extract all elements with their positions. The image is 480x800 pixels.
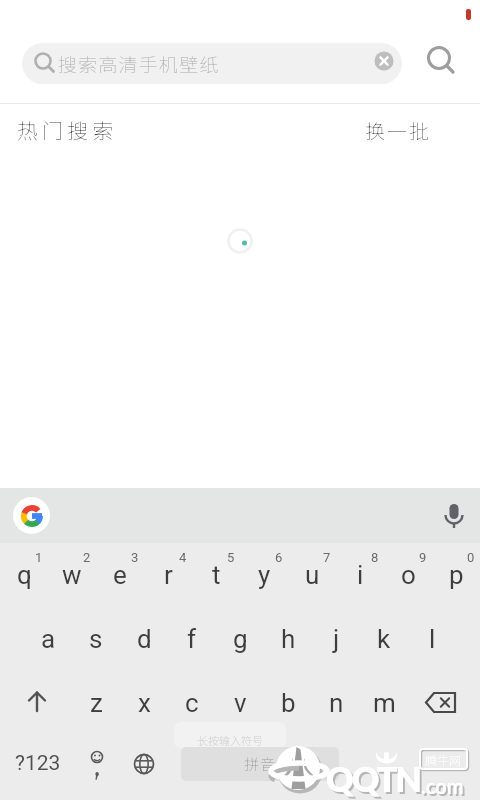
button[interactable]: 换一批	[355, 110, 441, 150]
staticText: h	[281, 624, 296, 654]
staticText: o	[401, 560, 416, 590]
staticText: p	[449, 560, 464, 590]
staticText: 热门搜索	[17, 115, 117, 145]
staticText: q	[17, 560, 32, 590]
button[interactable]: z	[72, 671, 120, 735]
button[interactable]: l	[408, 607, 456, 671]
button[interactable]	[120, 735, 168, 800]
staticText: u	[305, 560, 320, 590]
staticText: 2	[83, 550, 91, 565]
staticText: a	[41, 624, 56, 654]
staticText: QQTN	[328, 760, 422, 800]
button[interactable]	[432, 494, 476, 538]
staticText: 搜索高清手机壁纸	[58, 50, 220, 78]
staticText: 3	[131, 550, 139, 565]
staticText: QQTN	[326, 758, 420, 799]
staticText: v	[234, 688, 247, 718]
button[interactable]: i	[336, 543, 384, 607]
staticText: .com	[421, 774, 464, 798]
button[interactable]	[408, 671, 480, 735]
button[interactable]: e	[96, 543, 144, 607]
staticText: 5	[227, 550, 235, 565]
button[interactable]: m	[360, 671, 408, 735]
staticText: j	[333, 624, 340, 654]
staticText: m	[373, 688, 396, 718]
button[interactable]: k	[360, 607, 408, 671]
staticText: s	[89, 624, 103, 654]
staticText: r	[164, 560, 173, 590]
button[interactable]: s	[72, 607, 120, 671]
staticText: c	[185, 688, 199, 718]
staticText: w	[62, 560, 82, 590]
staticText: .com	[423, 776, 466, 800]
staticText: k	[377, 624, 391, 654]
button[interactable]: v	[216, 671, 264, 735]
button[interactable]: p	[432, 543, 480, 607]
button[interactable]: b	[264, 671, 312, 735]
button[interactable]: f	[168, 607, 216, 671]
staticText: 8	[371, 550, 379, 565]
button[interactable]: h	[264, 607, 312, 671]
button[interactable]	[0, 671, 72, 735]
staticText: i	[357, 560, 364, 590]
button[interactable]: u	[288, 543, 336, 607]
staticText: 0	[467, 550, 475, 565]
staticText: 长按输入符号	[197, 732, 263, 748]
button[interactable]: a	[24, 607, 72, 671]
staticText: t	[212, 560, 221, 590]
button[interactable]: c	[168, 671, 216, 735]
button[interactable]: ?123	[0, 735, 76, 800]
staticText: 1	[35, 550, 43, 565]
staticText: y	[258, 560, 271, 590]
staticText: 7	[323, 550, 331, 565]
staticText: d	[137, 624, 152, 654]
staticText: x	[138, 688, 151, 718]
staticText: 腾牛网	[425, 751, 462, 768]
staticText: 6	[275, 550, 283, 565]
staticText: b	[281, 688, 296, 718]
staticText: 拼音	[244, 753, 277, 775]
button[interactable]: d	[120, 607, 168, 671]
button[interactable]: x	[120, 671, 168, 735]
button[interactable]: 拼音	[181, 747, 339, 781]
staticText: n	[329, 688, 344, 718]
button[interactable]: 搜索高清手机壁纸	[22, 43, 402, 84]
button[interactable]: g	[216, 607, 264, 671]
button[interactable]	[13, 497, 50, 534]
staticText: f	[187, 624, 197, 654]
button[interactable]: w	[48, 543, 96, 607]
button[interactable]	[420, 40, 464, 84]
button[interactable]: o	[384, 543, 432, 607]
staticText: ?123	[15, 751, 61, 776]
staticText: 9	[419, 550, 427, 565]
button[interactable]: r	[144, 543, 192, 607]
staticText: 换一批	[365, 116, 431, 145]
staticText: l	[429, 624, 436, 654]
button[interactable]	[76, 735, 120, 800]
staticText: z	[90, 688, 103, 718]
staticText: 4	[179, 550, 187, 565]
staticText: e	[113, 560, 127, 590]
staticText: g	[233, 624, 248, 654]
button[interactable]: n	[312, 671, 360, 735]
button[interactable]: t	[192, 543, 240, 607]
button[interactable]: y	[240, 543, 288, 607]
button[interactable]: j	[312, 607, 360, 671]
button[interactable]: q	[0, 543, 48, 607]
